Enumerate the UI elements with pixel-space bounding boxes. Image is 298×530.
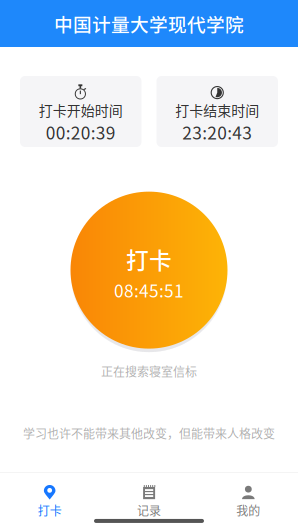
staticText: 正在搜索寝室信标 [101, 363, 197, 380]
staticText: 打卡 [126, 243, 172, 275]
staticText: 00:20:39 [46, 119, 116, 145]
button[interactable]: 打卡 [0, 485, 99, 519]
staticText: 08:45:51 [114, 277, 184, 303]
staticText: 打卡开始时间 [39, 100, 123, 120]
staticText: 中国计量大学现代学院 [54, 10, 244, 37]
staticText: 我的 [236, 502, 260, 519]
staticText: 打卡 [38, 502, 62, 519]
button[interactable]: 记录 [99, 485, 199, 519]
button[interactable]: 我的 [199, 485, 298, 519]
staticText: 记录 [137, 502, 161, 519]
button[interactable]: 打卡 [70, 192, 227, 349]
staticText: 学习也许不能带来其他改变，但能带来人格改变 [23, 425, 275, 442]
staticText: 打卡结束时间 [175, 100, 259, 120]
staticText: 23:20:43 [182, 119, 252, 145]
